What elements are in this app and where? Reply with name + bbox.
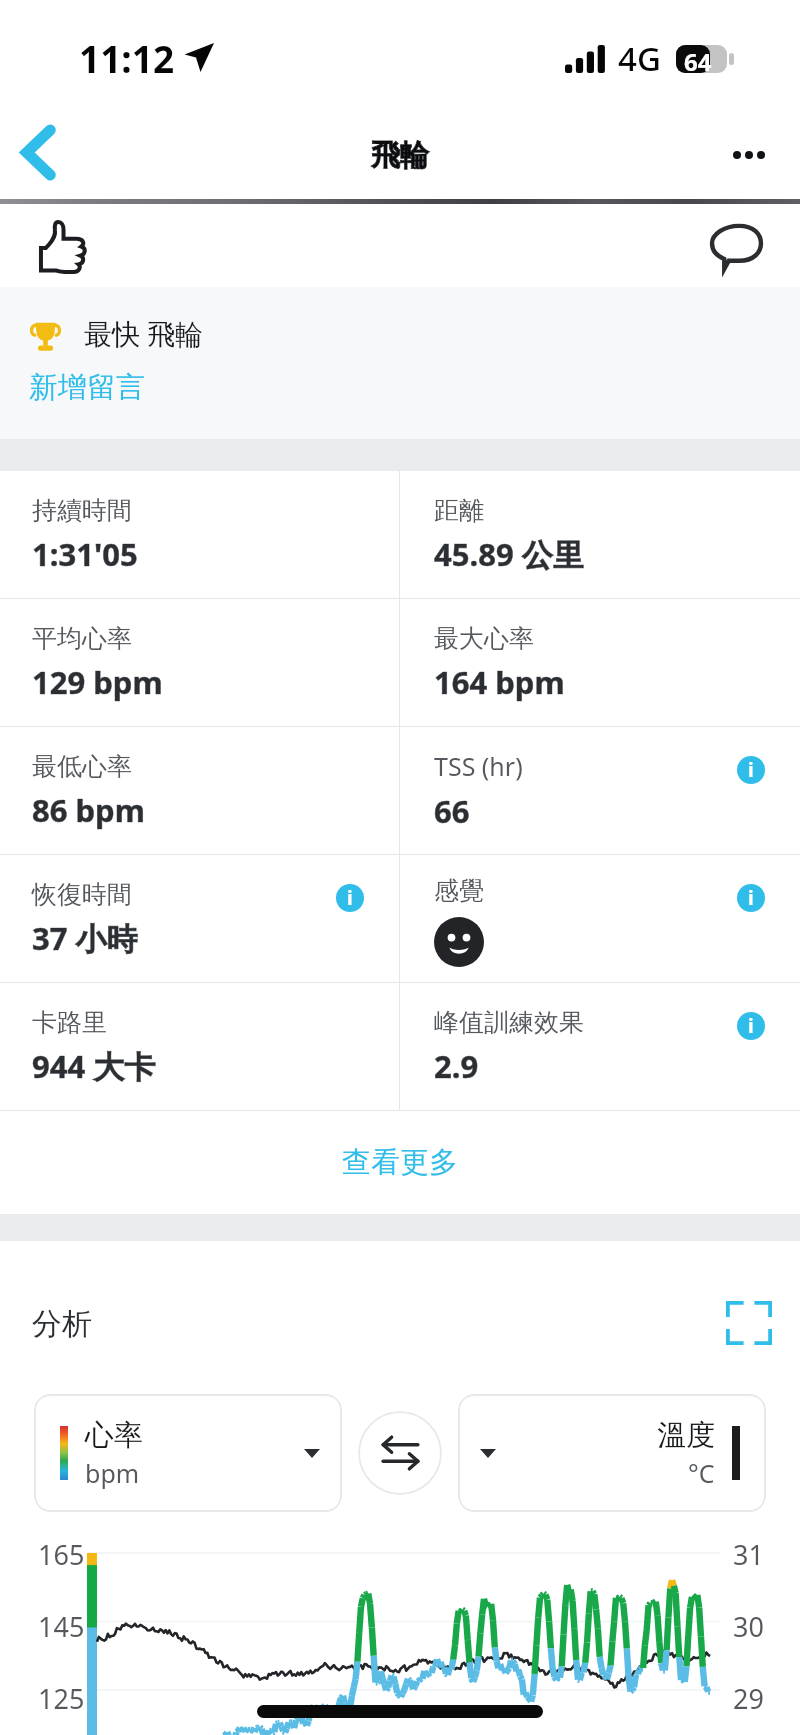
staticText: 最快 飛輪 xyxy=(84,314,204,352)
staticText: 飛輪 xyxy=(371,137,429,174)
button[interactable]: Swap axes xyxy=(358,1411,442,1495)
button[interactable]: Info xyxy=(737,1012,765,1040)
staticText: 心率 xyxy=(85,1417,143,1454)
button[interactable]: 感覺 xyxy=(400,855,800,982)
button[interactable]: 新增留言 xyxy=(29,369,145,406)
staticText: 感覺 xyxy=(434,875,484,906)
staticText: 11:12 xyxy=(79,33,175,83)
button[interactable]: 持續時間 xyxy=(0,471,399,598)
button[interactable]: 距離 xyxy=(400,471,800,598)
button[interactable]: 平均心率 xyxy=(0,599,399,726)
staticText: 飛輪 xyxy=(371,137,429,174)
staticText: 距離 xyxy=(434,495,484,526)
staticText: i xyxy=(748,757,754,783)
staticText: 165 xyxy=(38,1536,85,1573)
staticText: 66 xyxy=(434,790,470,832)
staticText: 125 xyxy=(38,1680,85,1717)
staticText: 129 bpm xyxy=(32,661,163,703)
staticText: 最低心率 xyxy=(32,751,132,782)
button[interactable]: Fullscreen xyxy=(721,1295,777,1351)
staticText: 2.9 xyxy=(434,1045,479,1087)
staticText: 持續時間 xyxy=(32,495,132,526)
staticText: 86 bpm xyxy=(32,789,145,831)
staticText: bpm xyxy=(85,1456,140,1490)
staticText: i xyxy=(748,885,754,911)
staticText: TSS (hr) xyxy=(434,749,523,783)
button[interactable]: Comment xyxy=(698,208,774,284)
staticText: 平均心率 xyxy=(32,623,132,654)
button[interactable]: Info xyxy=(737,756,765,784)
staticText: 分析 xyxy=(32,1305,92,1343)
staticText: 卡路里 xyxy=(32,1007,107,1038)
staticText: 2.9 xyxy=(434,1045,479,1087)
button[interactable]: 最大心率 xyxy=(400,599,800,726)
button[interactable]: Info xyxy=(336,884,364,912)
staticText: 溫度 xyxy=(657,1417,715,1454)
staticText: 66 xyxy=(434,790,470,832)
button[interactable]: 溫度 xyxy=(458,1394,766,1512)
staticText: 944 大卡 xyxy=(32,1045,156,1087)
staticText: 86 bpm xyxy=(32,789,145,831)
staticText: 31 xyxy=(733,1536,764,1573)
button[interactable]: 卡路里 xyxy=(0,983,399,1110)
staticText: °C xyxy=(688,1456,715,1490)
button[interactable]: Like xyxy=(26,208,102,284)
staticText: 1:31'05 xyxy=(32,533,138,575)
staticText: 45.89 公里 xyxy=(434,533,584,575)
staticText: 45.89 公里 xyxy=(434,533,584,575)
staticText: 944 大卡 xyxy=(32,1045,156,1087)
staticText: 129 bpm xyxy=(32,661,163,703)
staticText: 37 小時 xyxy=(32,917,138,959)
button[interactable]: 恢復時間 xyxy=(0,855,399,982)
button[interactable]: 心率 xyxy=(34,1394,342,1512)
button[interactable]: TSS (hr) xyxy=(400,727,800,854)
staticText: i xyxy=(748,1013,754,1039)
staticText: 4G xyxy=(618,36,661,81)
staticText: 145 xyxy=(38,1608,85,1645)
button[interactable]: 峰值訓練效果 xyxy=(400,983,800,1110)
staticText: 查看更多 xyxy=(342,1144,458,1181)
staticText: 恢復時間 xyxy=(32,879,132,910)
staticText: 30 xyxy=(733,1608,764,1645)
staticText: 29 xyxy=(733,1680,764,1717)
staticText: 164 bpm xyxy=(434,661,565,703)
button[interactable]: 最低心率 xyxy=(0,727,399,854)
staticText: 164 bpm xyxy=(434,661,565,703)
button[interactable]: More options xyxy=(716,122,782,188)
staticText: 新增留言 xyxy=(29,369,145,406)
button[interactable]: 查看更多 xyxy=(0,1111,800,1214)
staticText: i xyxy=(347,885,353,911)
button[interactable]: Back xyxy=(5,122,71,188)
staticText: 64 xyxy=(684,45,712,73)
staticText: 峰值訓練效果 xyxy=(434,1007,584,1038)
staticText: 最大心率 xyxy=(434,623,534,654)
staticText: 37 小時 xyxy=(32,917,138,959)
staticText: 1:31'05 xyxy=(32,533,138,575)
button[interactable]: Info xyxy=(737,884,765,912)
